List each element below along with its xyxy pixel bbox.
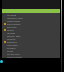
button[interactable]: Pictures bbox=[2, 25, 60, 28]
button[interactable]: Storage bbox=[2, 13, 60, 16]
staticText: Shared bbox=[7, 37, 16, 40]
button[interactable]: Backups bbox=[2, 40, 60, 43]
staticText: Trash bbox=[7, 49, 14, 52]
staticText: Documents bbox=[7, 22, 21, 25]
button[interactable]: Cloud sync bbox=[2, 52, 60, 55]
button[interactable]: System bbox=[2, 46, 60, 49]
staticText: Pictures bbox=[7, 25, 17, 28]
button[interactable]: Other media bbox=[2, 55, 60, 58]
staticText: Cloud sync bbox=[7, 52, 20, 55]
staticText: Storage bbox=[7, 13, 17, 16]
button[interactable]: Shared bbox=[2, 37, 60, 40]
staticText: Recent files bbox=[7, 34, 21, 37]
staticText: Music bbox=[7, 28, 14, 31]
staticText: Movies bbox=[7, 31, 16, 34]
button[interactable]: Memory card bbox=[2, 16, 60, 19]
staticText: Memory card bbox=[7, 16, 23, 19]
staticText: Downloads bbox=[7, 19, 21, 22]
button[interactable]: Downloads bbox=[2, 19, 60, 22]
button[interactable]: Trash bbox=[2, 49, 60, 52]
staticText: Other media bbox=[7, 55, 22, 58]
button[interactable]: Movies bbox=[2, 31, 60, 34]
staticText: System bbox=[7, 46, 16, 49]
staticText: Backups bbox=[7, 40, 17, 43]
button[interactable]: App data bbox=[2, 43, 60, 46]
button[interactable]: Music bbox=[2, 28, 60, 31]
button[interactable]: Documents bbox=[2, 22, 60, 25]
button[interactable]: Recent files bbox=[2, 34, 60, 37]
button[interactable] bbox=[0, 60, 3, 63]
staticText: App data bbox=[7, 43, 18, 46]
